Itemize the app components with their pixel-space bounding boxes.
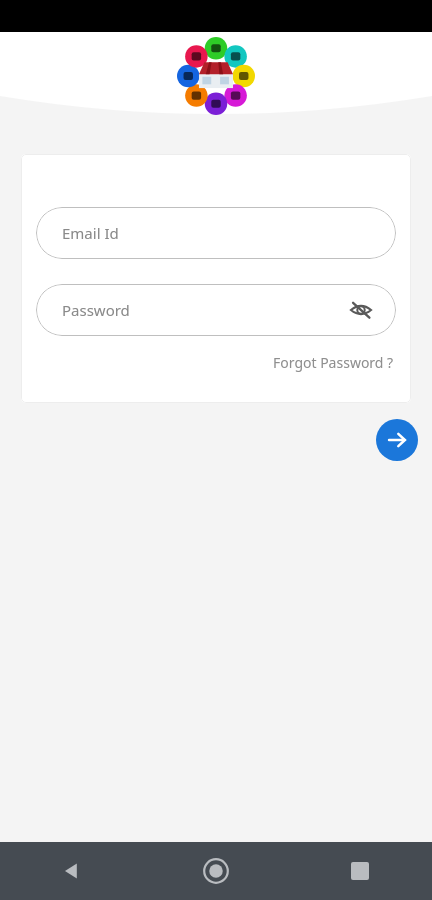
button[interactable]: Show password — [344, 293, 378, 327]
staticText: Forgot Password ? — [273, 353, 394, 372]
button[interactable]: Password — [36, 284, 396, 336]
button[interactable]: Forgot Password ? — [271, 350, 396, 375]
button[interactable]: Email Id — [36, 207, 396, 259]
button[interactable]: Home — [144, 842, 288, 900]
staticText: Email Id — [62, 223, 119, 243]
button[interactable]: Sign in — [376, 419, 418, 461]
staticText: Password — [62, 300, 130, 320]
button[interactable]: Back — [0, 842, 144, 900]
button[interactable]: Recent apps — [288, 842, 432, 900]
